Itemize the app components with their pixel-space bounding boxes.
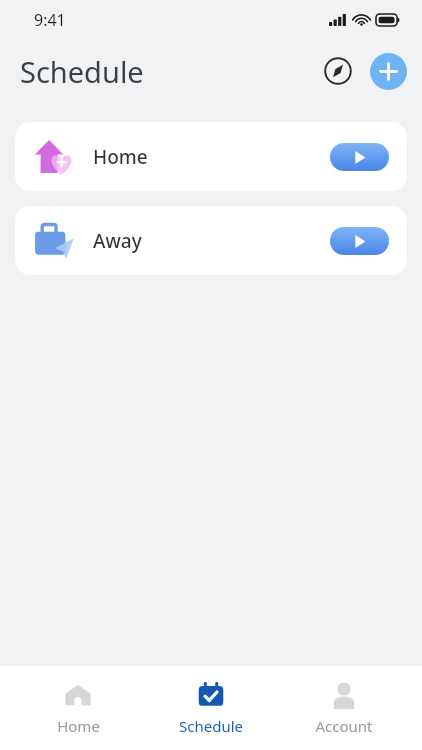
button[interactable]: Explore — [316, 49, 360, 93]
staticText: Home — [93, 144, 148, 170]
button[interactable]: Schedule — [156, 676, 266, 740]
button[interactable]: Start — [330, 143, 389, 171]
staticText: Home — [57, 716, 100, 736]
button[interactable]: Away — [15, 206, 407, 275]
button[interactable]: Add schedule — [370, 53, 407, 90]
staticText: 9:41 — [34, 9, 66, 31]
button[interactable]: Start — [330, 227, 389, 255]
button[interactable]: Home — [23, 676, 133, 740]
button[interactable]: Home — [15, 122, 407, 191]
staticText: Schedule — [20, 52, 144, 91]
staticText: Away — [93, 228, 142, 254]
staticText: Schedule — [179, 716, 243, 736]
button[interactable]: Account — [289, 676, 399, 740]
staticText: Account — [315, 716, 373, 736]
